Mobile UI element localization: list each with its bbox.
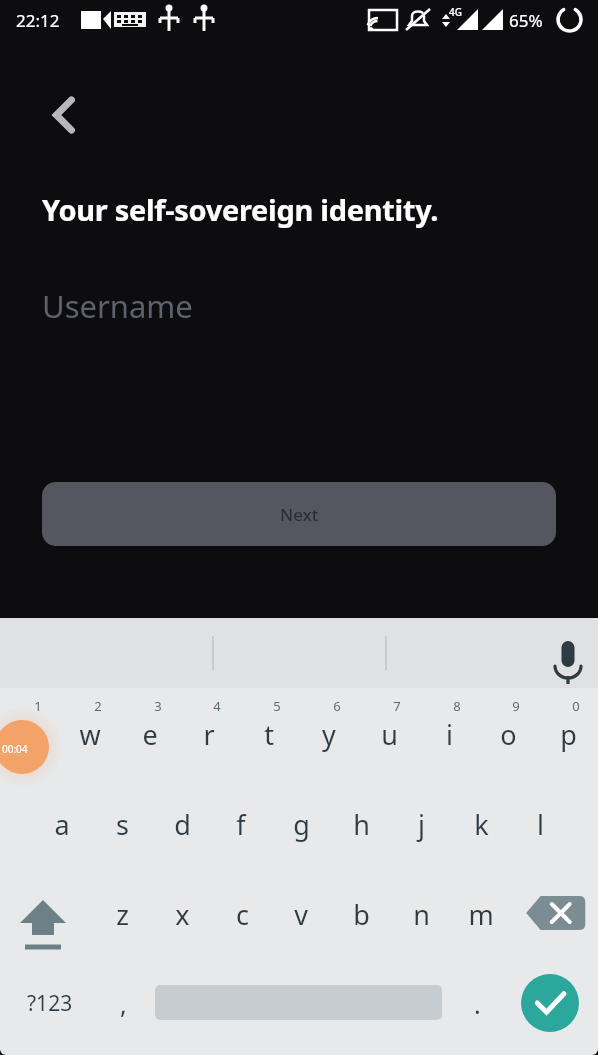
staticText: o [500,716,517,753]
staticText: j [418,806,425,843]
staticText: 22:12 [16,9,60,32]
button[interactable]: Enter [521,974,579,1032]
button[interactable]: n [391,883,451,945]
button[interactable]: Username [42,275,522,337]
button[interactable]: Back [38,88,92,142]
button[interactable]: Next [42,482,556,546]
button[interactable]: t [239,703,299,765]
staticText: w [79,716,101,753]
staticText: 7 [393,697,401,715]
button[interactable]: Voice input [538,618,598,688]
staticText: x [175,896,190,933]
staticText: p [560,716,577,753]
button[interactable]: b [331,883,391,945]
staticText: t [264,716,274,753]
button[interactable]: g [271,793,331,855]
button[interactable]: l [510,793,570,855]
button[interactable]: q [0,703,60,765]
staticText: i [446,716,453,753]
button[interactable]: ?123 [5,975,95,1031]
staticText: Next [280,503,319,526]
staticText: 8 [453,697,461,715]
staticText: m [468,896,494,933]
staticText: ?123 [27,989,73,1018]
staticText: a [54,806,70,843]
staticText: y [322,716,336,753]
button[interactable]: s [92,793,152,855]
staticText: v [294,896,308,933]
button[interactable]: . [452,978,502,1030]
staticText: s [116,806,129,843]
staticText: d [174,806,191,843]
staticText: b [353,896,370,933]
button[interactable]: Backspace [519,888,591,938]
button[interactable]: r [179,703,239,765]
staticText: h [353,806,370,843]
staticText: f [236,806,246,843]
button[interactable]: e [120,703,180,765]
staticText: 3 [154,697,162,715]
button[interactable]: i [419,703,479,765]
staticText: 65% [509,9,543,32]
staticText: g [293,806,310,843]
staticText: Username [42,285,193,327]
button[interactable]: d [152,793,212,855]
staticText: 1 [34,697,42,715]
button[interactable]: u [359,703,419,765]
button[interactable]: o [478,703,538,765]
button[interactable]: h [331,793,391,855]
staticText: 4G [449,5,462,19]
button[interactable]: v [271,883,331,945]
button[interactable]: k [451,793,511,855]
button[interactable]: j [391,793,451,855]
staticText: 5 [273,697,281,715]
staticText: 00:04 [2,742,28,756]
staticText: e [142,716,158,753]
button[interactable]: Shift [5,890,81,956]
button[interactable]: a [32,793,92,855]
staticText: 4 [213,697,221,715]
staticText: , [120,987,127,1021]
staticText: Your self-sovereign identity. [42,190,439,229]
button[interactable]: m [451,883,511,945]
button[interactable]: w [60,703,120,765]
button[interactable]: f [211,793,271,855]
staticText: 2 [94,697,102,715]
staticText: 6 [333,697,341,715]
staticText: c [236,896,249,933]
button[interactable]: y [299,703,359,765]
staticText: 9 [512,697,520,715]
staticText: u [381,716,398,753]
staticText: k [474,806,489,843]
button[interactable]: c [212,883,272,945]
button[interactable]: , [98,978,148,1030]
staticText: q [22,716,39,753]
staticText: z [116,896,129,933]
staticText: . [474,987,481,1021]
staticText: r [203,716,215,753]
button[interactable]: z [92,883,152,945]
staticText: n [413,896,430,933]
button[interactable]: p [538,703,598,765]
button[interactable]: x [152,883,212,945]
staticText: 0 [572,697,580,715]
staticText: l [537,806,544,843]
